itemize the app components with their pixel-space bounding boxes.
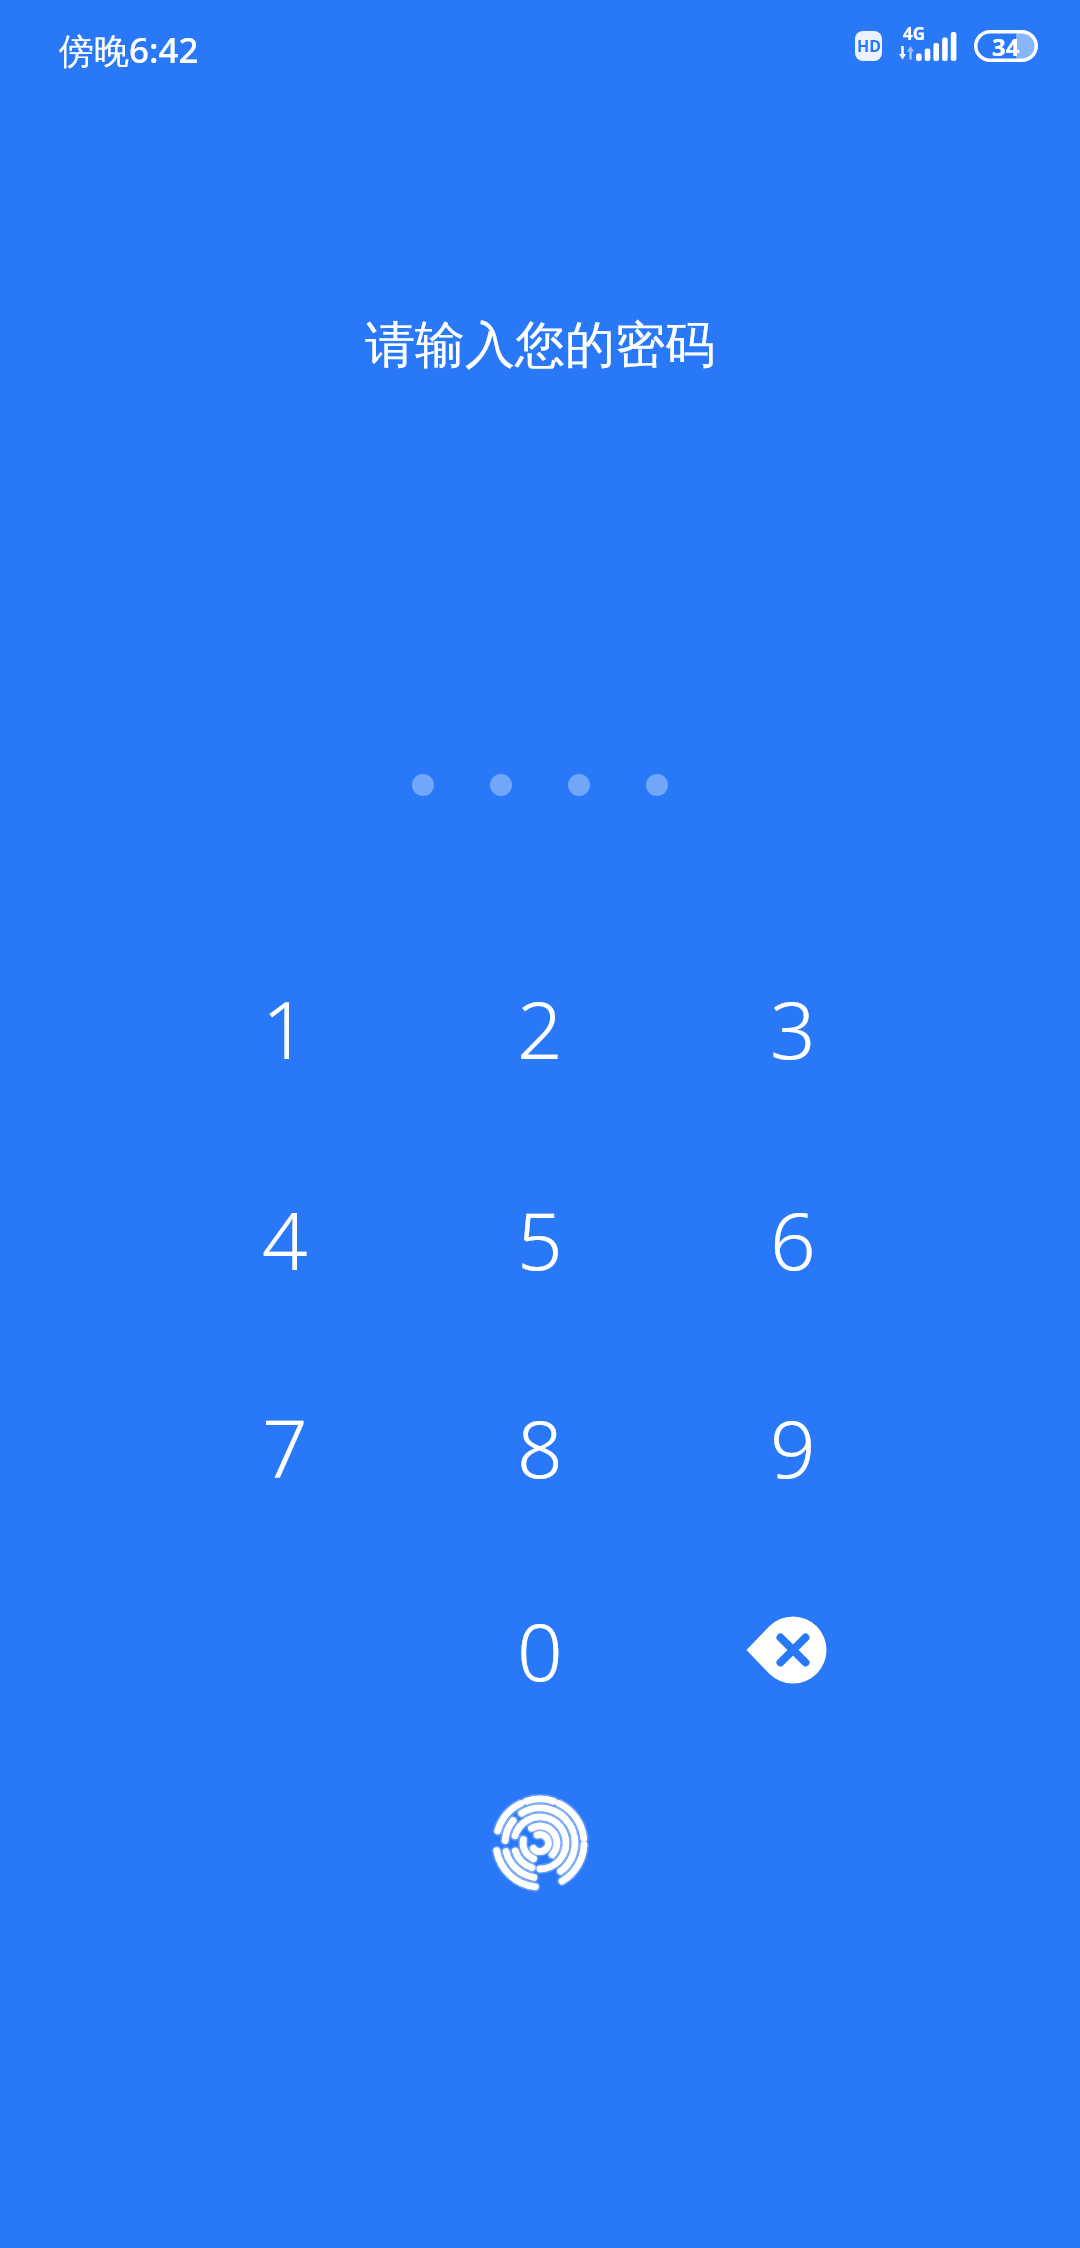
button[interactable]: 0 <box>455 1564 625 1734</box>
button[interactable]: 9 <box>708 1361 878 1531</box>
staticText: 0 <box>517 1595 563 1704</box>
staticText: 请输入您的密码 <box>365 314 715 377</box>
button[interactable] <box>480 1783 600 1903</box>
staticText: 8 <box>517 1392 563 1501</box>
button[interactable] <box>708 1565 878 1735</box>
staticText: 5 <box>517 1184 563 1293</box>
staticText: 4G <box>903 22 926 45</box>
button[interactable]: 3 <box>708 942 878 1112</box>
button[interactable]: 5 <box>455 1153 625 1323</box>
staticText: 7 <box>262 1392 308 1501</box>
staticText: 9 <box>770 1392 816 1501</box>
button[interactable]: 4 <box>200 1153 370 1323</box>
staticText: 3 <box>770 973 816 1082</box>
staticText: 4 <box>262 1184 308 1293</box>
staticText: HD <box>857 35 881 57</box>
staticText: 傍晚6:42 <box>59 26 199 74</box>
staticText: 2 <box>517 973 563 1082</box>
staticText: 6 <box>770 1184 816 1293</box>
button[interactable]: 8 <box>455 1361 625 1531</box>
button[interactable]: 1 <box>200 942 370 1112</box>
button[interactable]: 2 <box>455 942 625 1112</box>
button[interactable]: 6 <box>708 1153 878 1323</box>
staticText: 1 <box>262 973 308 1082</box>
staticText: 34 <box>992 30 1020 62</box>
button[interactable]: 7 <box>200 1361 370 1531</box>
